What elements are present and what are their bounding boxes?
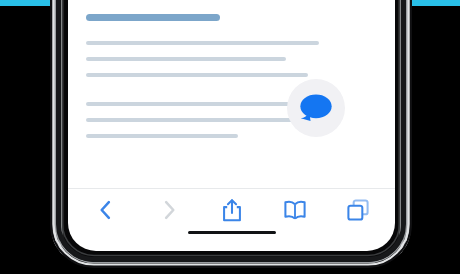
button[interactable]: Tabs [326,189,389,231]
button[interactable]: Bookmarks [263,189,326,231]
button[interactable]: Forward [137,189,200,231]
button[interactable]: Share [200,189,263,231]
button[interactable]: New message [287,79,345,137]
button[interactable]: Back [74,189,137,231]
